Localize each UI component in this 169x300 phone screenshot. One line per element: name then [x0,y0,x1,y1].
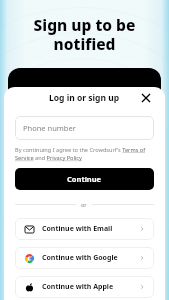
button[interactable]: Phone number [15,116,154,140]
button[interactable]: Continue with Apple [15,276,154,298]
staticText: Sign up to be notified [0,14,169,54]
staticText: Continue with Email [42,224,113,234]
staticText: By continuing I agree to the Crowdsurf's… [15,146,154,162]
button[interactable]: Continue [15,168,154,190]
button[interactable]: Close [138,90,154,106]
staticText: Continue with Google [42,253,118,263]
staticText: Log in or sign up [49,92,120,104]
button[interactable]: Continue with Google [15,247,154,269]
button[interactable]: Continue with Email [15,218,154,240]
staticText: or [81,201,87,208]
staticText: Phone number [23,123,76,133]
staticText: Continue with Apple [42,282,114,292]
staticText: Continue [67,174,102,184]
